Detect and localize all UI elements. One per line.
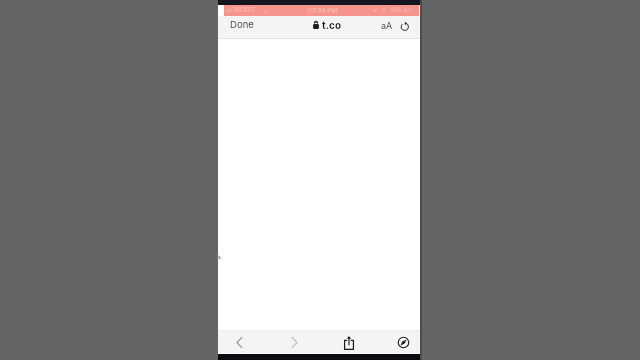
staticText: aA (381, 20, 393, 31)
staticText: t.co (322, 19, 342, 31)
button[interactable]: Text size options (380, 18, 394, 33)
button[interactable]: Done (228, 17, 256, 33)
staticText: Done (230, 19, 254, 31)
staticText: 30% (390, 7, 403, 14)
button[interactable]: Back (231, 334, 248, 351)
staticText: CRICKET (230, 7, 256, 14)
staticText: 7:38 PM (312, 7, 338, 15)
button[interactable]: Reload page (400, 21, 410, 31)
button[interactable]: Open in Safari (395, 334, 412, 351)
button[interactable]: Share (340, 334, 358, 352)
button[interactable]: Forward (286, 334, 303, 351)
button[interactable]: t.co (312, 17, 340, 33)
